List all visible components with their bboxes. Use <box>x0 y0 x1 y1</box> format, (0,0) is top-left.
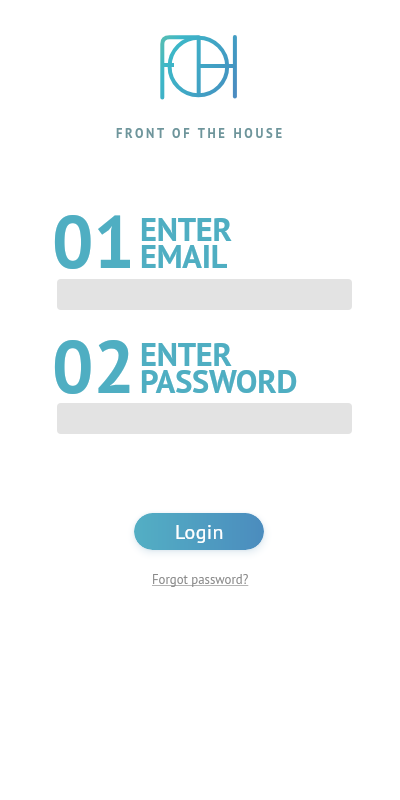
staticText: Forgot password? <box>152 571 249 588</box>
staticText: ENTER <box>140 333 232 375</box>
staticText: FRONT OF THE HOUSE <box>116 125 285 141</box>
button[interactable]: Forgot password? <box>148 569 253 590</box>
staticText: ENTER <box>140 208 232 250</box>
staticText: 02 <box>52 319 135 413</box>
staticText: 01 <box>52 194 135 288</box>
staticText: EMAIL <box>140 235 228 277</box>
staticText: Login <box>175 519 224 545</box>
button[interactable]: Login <box>134 513 264 550</box>
staticText: PASSWORD <box>140 360 298 402</box>
other: Front of the House logo <box>158 30 242 102</box>
